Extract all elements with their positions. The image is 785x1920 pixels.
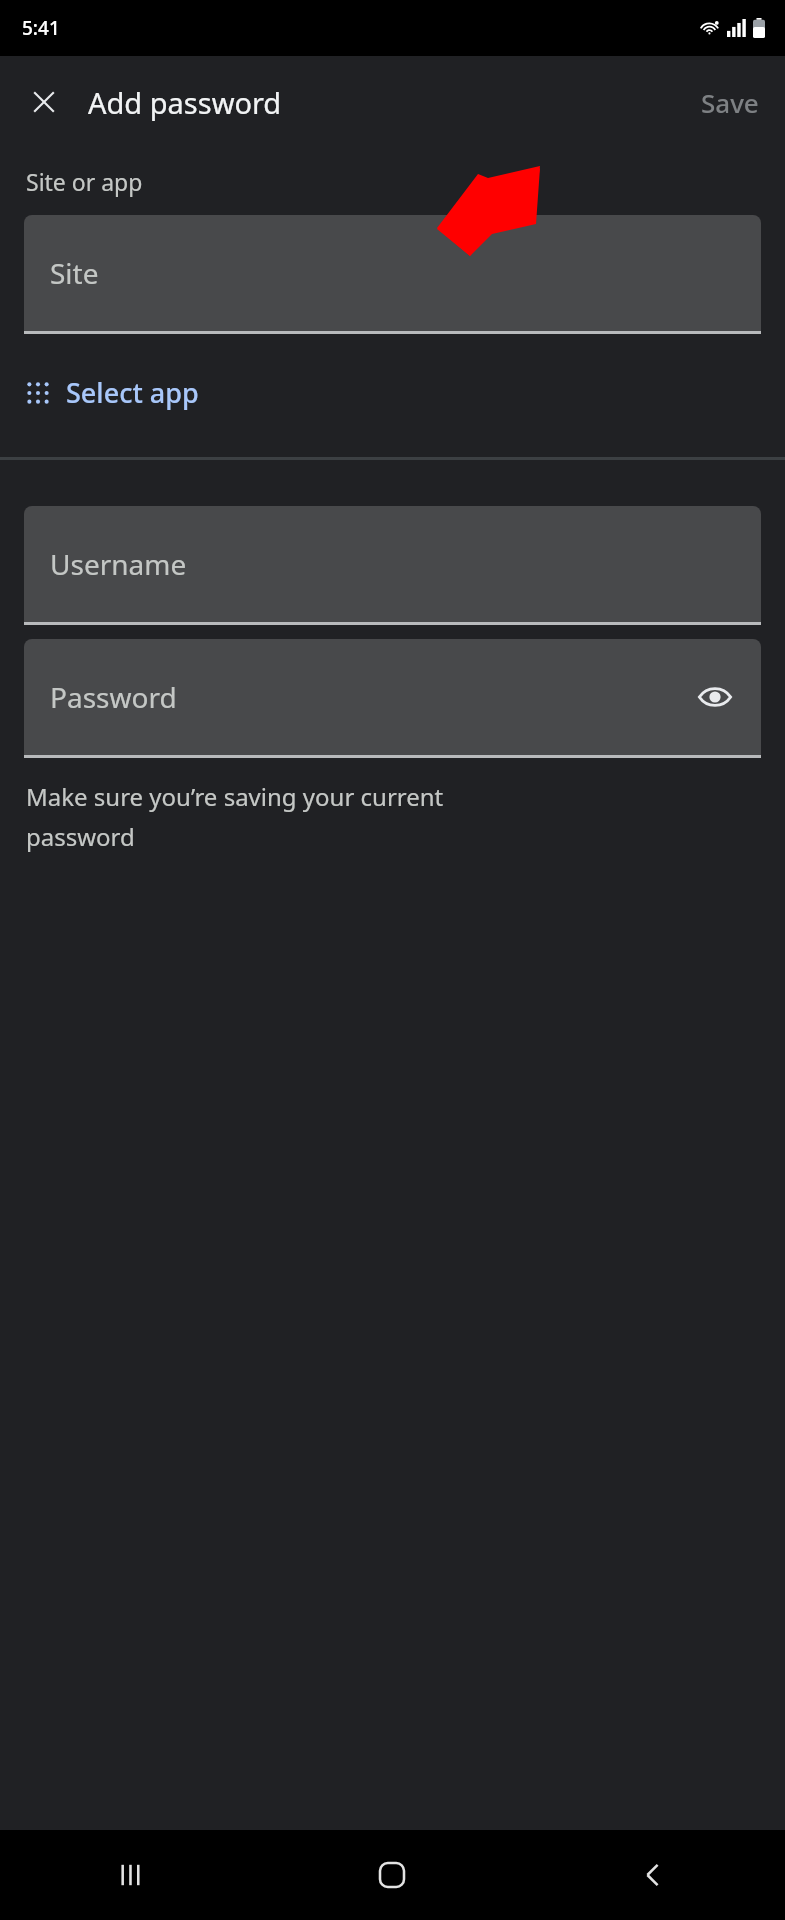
staticText: Site (50, 254, 99, 292)
staticText: Make sure you’re saving your current pas… (26, 780, 444, 853)
button[interactable]: Show password (687, 669, 743, 725)
staticText: Username (50, 545, 187, 583)
button[interactable]: Home (261, 1830, 523, 1920)
staticText: Save (701, 85, 759, 120)
button[interactable]: Select app (18, 366, 207, 419)
button[interactable]: Site (24, 215, 761, 334)
button[interactable]: Recent apps (0, 1830, 261, 1920)
button[interactable]: Back (523, 1830, 785, 1920)
button[interactable]: Save (681, 71, 779, 134)
button[interactable]: Username (24, 506, 761, 625)
staticText: Add password (88, 83, 282, 122)
button[interactable]: Close (12, 70, 76, 134)
staticText: Password (50, 678, 177, 716)
staticText: Select app (66, 374, 199, 411)
button[interactable]: Password (24, 639, 761, 758)
staticText: Site or app (26, 166, 143, 197)
staticText: 5:41 (22, 15, 60, 41)
